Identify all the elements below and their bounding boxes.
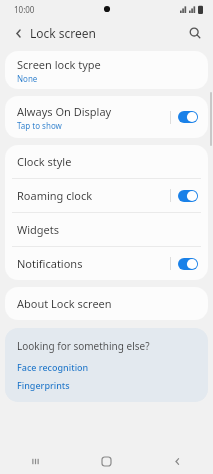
staticText: Lock screen [30,25,97,41]
button[interactable]: Recents [0,448,71,474]
staticText: Clock style [17,154,72,169]
button[interactable]: Notifications toggle, on [178,258,198,270]
button[interactable]: About Lock screen [5,287,208,320]
staticText: Roaming clock [17,188,93,203]
button[interactable]: Roaming clock [5,179,208,212]
staticText: None [17,73,38,84]
staticText: Tap to show [17,120,62,131]
staticText: Notifications [17,256,83,271]
button[interactable]: Notifications [5,247,208,280]
button[interactable]: Search [185,23,205,43]
button[interactable]: Fingerprints [17,379,70,391]
button[interactable]: Always On Display [5,96,208,138]
staticText: Looking for something else? [17,339,150,353]
staticText: Screen lock type [17,57,101,72]
button[interactable]: Back [8,23,28,43]
staticText: Always On Display [17,104,112,119]
button[interactable]: Always On Display toggle, on [178,111,198,123]
button[interactable]: Widgets [5,213,208,246]
staticText: About Lock screen [17,296,112,311]
button[interactable]: Back [142,448,213,474]
staticText: Widgets [17,222,60,237]
button[interactable]: Roaming clock toggle, on [178,190,198,202]
staticText: Fingerprints [17,379,70,391]
staticText: 10:00 [14,4,35,15]
staticText: Face recognition [17,361,89,373]
button[interactable]: Clock style [5,145,208,178]
button[interactable]: Face recognition [17,361,89,373]
button[interactable]: Home [71,448,142,474]
button[interactable]: Screen lock type [5,51,208,89]
